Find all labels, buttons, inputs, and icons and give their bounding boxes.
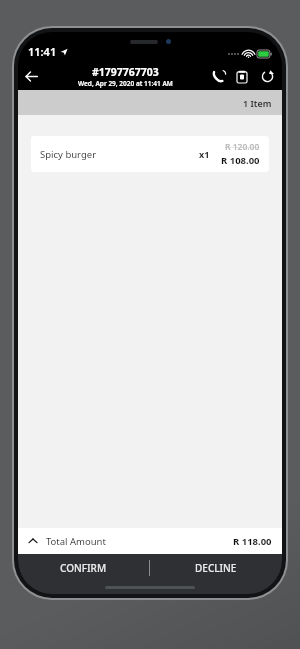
staticText: 11:41 — [28, 44, 57, 59]
staticText: Spicy burger — [40, 148, 199, 161]
staticText: x1 — [199, 148, 210, 160]
staticText: R 120.00 — [225, 141, 260, 153]
staticText: 1 Item — [243, 97, 272, 109]
button[interactable]: Call — [206, 64, 230, 88]
staticText: R 118.00 — [233, 535, 272, 548]
staticText: Total Amount — [46, 535, 233, 548]
button[interactable]: Back — [18, 63, 44, 89]
button[interactable]: Spicy burger — [31, 136, 269, 172]
button[interactable]: Refresh — [254, 63, 280, 89]
button[interactable]: DECLINE — [150, 554, 282, 582]
staticText: Wed, Apr 29, 2020 at 11:41 AM — [78, 79, 173, 88]
button[interactable]: Total Amount — [18, 528, 282, 554]
staticText: #1797767703 — [92, 65, 159, 79]
button[interactable]: CONFIRM — [18, 554, 149, 582]
staticText: DECLINE — [195, 561, 237, 575]
staticText: CONFIRM — [60, 561, 107, 575]
staticText: R 108.00 — [221, 154, 260, 167]
button[interactable]: Receipt — [230, 64, 254, 88]
